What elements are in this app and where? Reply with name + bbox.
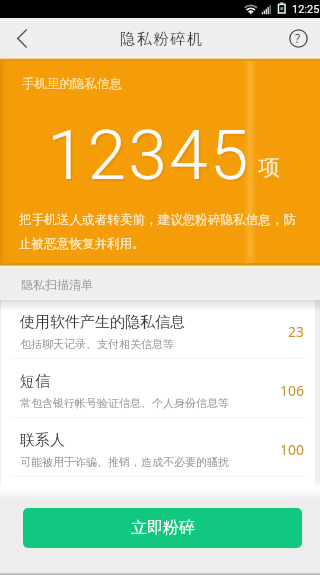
staticText: 项 bbox=[258, 154, 280, 182]
staticText: 手机里的隐私信息 bbox=[22, 76, 122, 92]
staticText: 58 bbox=[288, 499, 305, 518]
staticText: 把手机送人或者转卖前，建议您粉碎隐私信息，防 止被恶意恢复并利用。 bbox=[19, 212, 297, 252]
staticText: 12:25 bbox=[292, 3, 320, 16]
staticText: 常包含银行帐号验证信息、个人身份信息等 bbox=[20, 396, 229, 410]
staticText: 立即粉碎 bbox=[131, 518, 195, 538]
staticText: 12345 bbox=[47, 115, 251, 196]
button[interactable]: Help bbox=[276, 18, 320, 58]
button[interactable]: 短信 bbox=[1, 359, 315, 417]
button[interactable]: 联系人 bbox=[1, 418, 315, 476]
staticText: 23 bbox=[288, 322, 305, 341]
button[interactable]: Back bbox=[0, 18, 44, 58]
staticText: 可能被用于诈骗、推销，造成不必要的骚扰 bbox=[20, 455, 229, 469]
staticText: 使用软件产生的隐私信息 bbox=[20, 313, 185, 332]
staticText: 隐私扫描清单 bbox=[21, 277, 93, 292]
staticText: 106 bbox=[280, 381, 305, 400]
staticText: 包括通话时间、联系人等 bbox=[20, 514, 141, 524]
staticText: 联系人 bbox=[20, 431, 65, 450]
button[interactable]: 使用软件产生的隐私信息 bbox=[1, 300, 315, 358]
button[interactable]: 通话记录 bbox=[1, 477, 315, 524]
staticText: 100 bbox=[280, 440, 305, 459]
staticText: 通话记录 bbox=[20, 490, 80, 509]
staticText: 12345 bbox=[49, 117, 253, 198]
staticText: 包括聊天记录、支付相关信息等 bbox=[20, 337, 174, 351]
button[interactable]: 立即粉碎 bbox=[23, 508, 302, 548]
staticText: 短信 bbox=[20, 372, 50, 391]
staticText: ? bbox=[295, 30, 301, 46]
staticText: 隐私粉碎机 bbox=[119, 30, 203, 49]
